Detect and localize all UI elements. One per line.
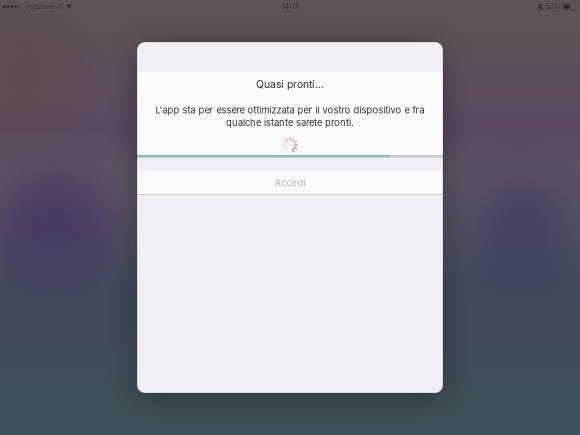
staticText: vodafone IT — [25, 2, 63, 10]
staticText: 14:17 — [281, 2, 298, 11]
staticText: 53% — [545, 2, 560, 11]
staticText: Accedi — [274, 177, 305, 189]
button[interactable]: Accedi — [137, 171, 443, 195]
staticText: L'app sta per essere ottimizzata per il … — [155, 105, 424, 116]
staticText: Quasi pronti... — [256, 78, 324, 91]
staticText: qualche istante sarete pronti. — [226, 117, 354, 128]
